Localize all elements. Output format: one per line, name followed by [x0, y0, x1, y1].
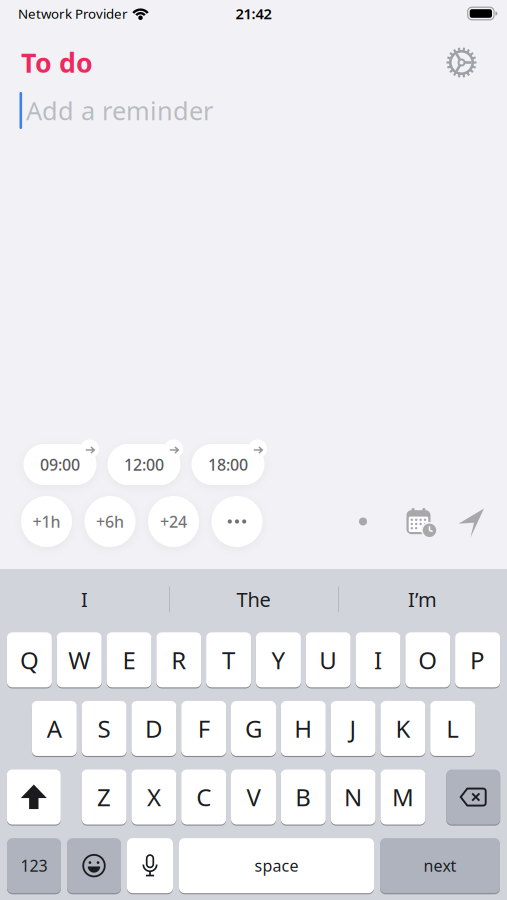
- staticText: space: [254, 855, 298, 876]
- button[interactable]: Q: [7, 632, 52, 687]
- button[interactable]: Shift: [7, 769, 61, 824]
- staticText: R: [171, 644, 186, 676]
- button[interactable]: I’m: [347, 574, 497, 624]
- staticText: I: [81, 586, 88, 613]
- button[interactable]: K: [380, 701, 425, 756]
- staticText: 09:00: [40, 454, 80, 475]
- staticText: 21:42: [235, 4, 271, 23]
- button[interactable]: I: [355, 632, 400, 687]
- staticText: F: [198, 712, 210, 744]
- button[interactable]: M: [380, 769, 425, 824]
- staticText: L: [446, 712, 459, 744]
- button[interactable]: W: [57, 632, 102, 687]
- button[interactable]: Save reminder: [456, 507, 486, 538]
- button[interactable]: +24: [148, 496, 199, 547]
- button[interactable]: R: [156, 632, 201, 687]
- button[interactable]: Z: [82, 769, 127, 824]
- staticText: Z: [97, 781, 111, 813]
- staticText: +6h: [96, 511, 124, 532]
- button[interactable]: T: [206, 632, 251, 687]
- staticText: X: [147, 781, 161, 813]
- button[interactable]: J: [331, 701, 376, 756]
- button[interactable]: Delete: [446, 769, 500, 824]
- staticText: 18:00: [208, 454, 248, 475]
- staticText: N: [344, 781, 362, 813]
- staticText: H: [294, 712, 312, 744]
- button[interactable]: F: [181, 701, 226, 756]
- button[interactable]: Pick date: [406, 508, 438, 539]
- button[interactable]: next: [380, 838, 500, 893]
- staticText: W: [68, 644, 90, 676]
- button[interactable]: The: [178, 574, 328, 624]
- staticText: 12:00: [124, 454, 164, 475]
- staticText: U: [319, 644, 337, 676]
- staticText: T: [222, 644, 235, 676]
- button[interactable]: Emoji: [67, 838, 121, 893]
- staticText: C: [196, 781, 211, 813]
- button[interactable]: X: [131, 769, 176, 824]
- button[interactable]: I: [9, 574, 159, 624]
- button[interactable]: Y: [256, 632, 301, 687]
- button[interactable]: D: [131, 701, 176, 756]
- staticText: Q: [20, 644, 39, 676]
- button[interactable]: P: [455, 632, 500, 687]
- button[interactable]: V: [231, 769, 276, 824]
- button[interactable]: Dictate: [127, 838, 173, 893]
- button[interactable]: L: [430, 701, 475, 756]
- button[interactable]: 12:00: [107, 444, 180, 485]
- staticText: The: [236, 586, 270, 613]
- button[interactable]: U: [306, 632, 351, 687]
- staticText: Add a reminder: [26, 94, 213, 127]
- button[interactable]: G: [231, 701, 276, 756]
- staticText: V: [246, 781, 260, 813]
- button[interactable]: More options: [211, 496, 262, 547]
- button[interactable]: E: [106, 632, 151, 687]
- button[interactable]: A: [32, 701, 77, 756]
- button[interactable]: O: [405, 632, 450, 687]
- button[interactable]: Add a reminder: [0, 88, 507, 132]
- staticText: G: [245, 712, 262, 744]
- button[interactable]: +6h: [84, 496, 135, 547]
- staticText: J: [350, 712, 357, 744]
- button[interactable]: N: [331, 769, 376, 824]
- button[interactable]: Settings: [445, 46, 478, 79]
- button[interactable]: space: [179, 838, 374, 893]
- staticText: K: [395, 712, 410, 744]
- button[interactable]: H: [281, 701, 326, 756]
- button[interactable]: Numbers: [7, 838, 61, 893]
- button[interactable]: +1h: [21, 496, 72, 547]
- staticText: 123: [20, 855, 47, 876]
- staticText: O: [418, 644, 437, 676]
- staticText: To do: [21, 45, 93, 80]
- button[interactable]: B: [281, 769, 326, 824]
- staticText: P: [470, 644, 485, 676]
- staticText: D: [145, 712, 163, 744]
- staticText: Y: [271, 644, 285, 676]
- button[interactable]: 18:00: [191, 444, 264, 485]
- staticText: M: [392, 781, 414, 813]
- button[interactable]: C: [181, 769, 226, 824]
- staticText: next: [423, 855, 456, 876]
- button[interactable]: S: [82, 701, 127, 756]
- staticText: +24: [160, 511, 187, 532]
- staticText: S: [98, 712, 111, 744]
- button[interactable]: 09:00: [23, 444, 96, 485]
- staticText: B: [295, 781, 311, 813]
- staticText: A: [47, 712, 62, 744]
- staticText: I’m: [408, 586, 437, 613]
- staticText: Network Provider: [18, 5, 128, 22]
- staticText: E: [122, 644, 135, 676]
- staticText: +1h: [32, 511, 60, 532]
- staticText: I: [374, 644, 382, 676]
